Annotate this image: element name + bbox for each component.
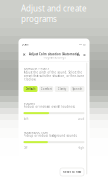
staticText: Program settings (42, 56, 65, 59)
staticText: NOISE REDUCTION (23, 131, 47, 134)
button[interactable]: Reset to new (60, 168, 84, 176)
button[interactable]: Reset (76, 52, 80, 57)
button[interactable]: Speech (70, 86, 85, 92)
staticText: Comfort (41, 87, 52, 91)
staticText: High (77, 146, 84, 150)
staticText: Off (23, 146, 27, 150)
staticText: Reduce or increase overall loudness. (23, 105, 75, 108)
staticText: Adjust Calm situation (Automatic) (29, 52, 79, 56)
staticText: ☰ (83, 53, 85, 56)
button[interactable]: More options (82, 52, 86, 57)
staticText: Pick up or reduce background sounds. (23, 134, 77, 137)
staticText: Reset to new (63, 170, 81, 174)
staticText: Adjust the pitch of the sound. Select th… (23, 71, 84, 81)
staticText: Adjust and create programs (21, 3, 87, 24)
button[interactable]: Default (23, 86, 38, 92)
staticText: Loud (77, 117, 84, 121)
staticText: VOLUME (23, 102, 34, 105)
staticText: ••• ▭ (79, 43, 86, 46)
staticText: Default (25, 87, 35, 91)
staticText: Soft (23, 117, 28, 121)
button[interactable]: Close (21, 52, 26, 57)
button[interactable]: Clarity (55, 86, 69, 92)
staticText: EQUALIZER PRESETS (23, 67, 48, 70)
button[interactable]: Comfort (39, 86, 53, 92)
staticText: ✕ (22, 52, 25, 57)
staticText: Clarity (58, 87, 66, 91)
staticText: Speech (72, 87, 82, 91)
staticText: ↻ (77, 53, 80, 57)
staticText: 9:41 (22, 43, 29, 46)
